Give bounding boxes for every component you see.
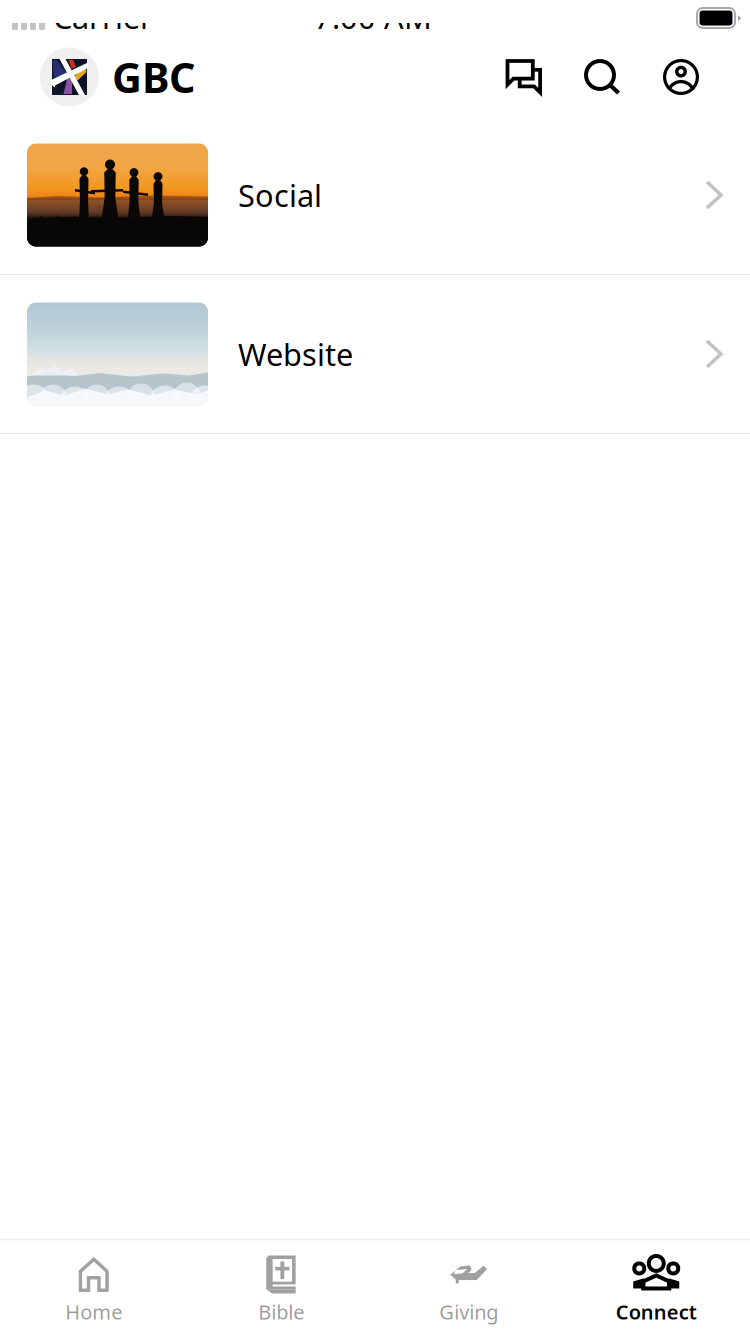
staticText: Social: [238, 175, 322, 215]
button[interactable]: GBC: [40, 43, 196, 110]
staticText: Connect: [616, 1298, 697, 1325]
staticText: Bible: [258, 1298, 304, 1325]
staticText: Carrier: [53, 0, 153, 37]
button[interactable]: Account: [642, 46, 720, 108]
button[interactable]: Home: [0, 1240, 187, 1334]
button[interactable]: Messages: [485, 46, 563, 108]
button[interactable]: Search: [563, 46, 642, 108]
button[interactable]: Connect: [562, 1240, 750, 1334]
staticText: GBC: [112, 50, 196, 104]
button[interactable]: Website: [0, 275, 750, 433]
button[interactable]: Giving: [375, 1240, 562, 1334]
button[interactable]: Bible: [187, 1240, 375, 1334]
button[interactable]: Social: [0, 116, 750, 274]
staticText: Giving: [439, 1298, 498, 1325]
staticText: Website: [238, 334, 353, 374]
staticText: Home: [65, 1298, 122, 1325]
staticText: 7:00 AM: [314, 0, 432, 37]
